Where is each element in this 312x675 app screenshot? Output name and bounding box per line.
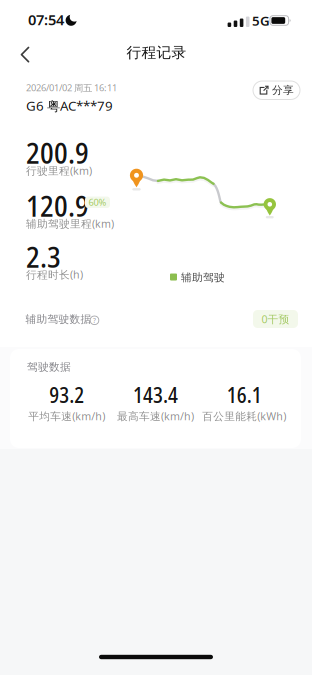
staticText: 0干预 (261, 312, 289, 326)
staticText: 143.4 (133, 381, 178, 409)
staticText: 5G (252, 12, 270, 29)
staticText: 200.9 (26, 133, 89, 172)
staticText: 辅助驾驶数据 (25, 313, 91, 326)
staticText: 行驶里程(km) (26, 163, 92, 178)
staticText: 辅助驾驶 (181, 271, 225, 284)
staticText: 2.3 (26, 237, 61, 276)
button[interactable]: Back (11, 44, 45, 65)
staticText: 平均车速(km/h) (28, 409, 105, 423)
staticText: 行程记录 (126, 43, 186, 61)
staticText: 最高车速(km/h) (117, 409, 194, 423)
staticText: G6 粤AC***79 (26, 97, 113, 114)
staticText: 07:54 (28, 10, 64, 29)
staticText: 16.1 (227, 381, 262, 409)
staticText: 120.9 (26, 186, 89, 225)
button[interactable]: 帮助 (89, 315, 99, 325)
staticText: 辅助驾驶里程(km) (26, 216, 114, 231)
staticText: 分享 (272, 84, 294, 97)
staticText: 行程时长(h) (26, 267, 83, 282)
staticText: 2026/01/02 周五 16:11 (26, 81, 117, 94)
button[interactable]: 分享 (253, 81, 300, 99)
staticText: 93.2 (49, 381, 84, 409)
staticText: 驾驶数据 (27, 360, 71, 373)
staticText: 60% (88, 196, 106, 208)
staticText: ? (93, 316, 96, 325)
staticText: 百公里能耗(kWh) (202, 409, 286, 423)
